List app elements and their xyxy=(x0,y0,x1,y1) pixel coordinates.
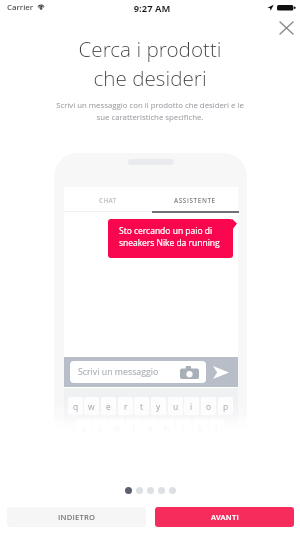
staticText: f xyxy=(132,423,135,434)
staticText: w xyxy=(88,401,95,412)
staticText: CHAT xyxy=(99,196,117,205)
staticText: r xyxy=(124,401,128,412)
button[interactable]: Scrivi un messaggio xyxy=(70,361,206,383)
staticText: Carrier xyxy=(7,2,34,13)
button[interactable]: INDIETRO xyxy=(7,507,146,527)
staticText: Scrivi un messaggio con il prodotto che … xyxy=(15,100,285,122)
staticText: p xyxy=(223,401,229,412)
staticText: INDIETRO xyxy=(58,512,96,522)
staticText: 9:27 AM xyxy=(2,2,300,15)
button[interactable]: Invia xyxy=(209,360,233,384)
button[interactable]: ASSISTENTE xyxy=(151,188,238,213)
staticText: t xyxy=(140,401,143,412)
staticText: ASSISTENTE xyxy=(174,196,216,205)
button[interactable]: CHAT xyxy=(64,188,151,213)
button[interactable]: AVANTI xyxy=(155,507,294,527)
staticText: Scrivi un messaggio xyxy=(78,366,159,378)
staticText: e xyxy=(106,401,111,412)
staticText: i xyxy=(190,401,193,412)
staticText: Cerca i prodotti che desideri xyxy=(0,35,300,92)
button[interactable]: Chiudi xyxy=(272,14,300,42)
staticText: Sto cercando un paio di sneakers Nike da… xyxy=(119,225,220,248)
staticText: q xyxy=(73,401,79,412)
staticText: AVANTI xyxy=(211,512,239,522)
staticText: o xyxy=(206,401,212,412)
staticText: u xyxy=(173,401,179,412)
staticText: y xyxy=(156,401,161,412)
